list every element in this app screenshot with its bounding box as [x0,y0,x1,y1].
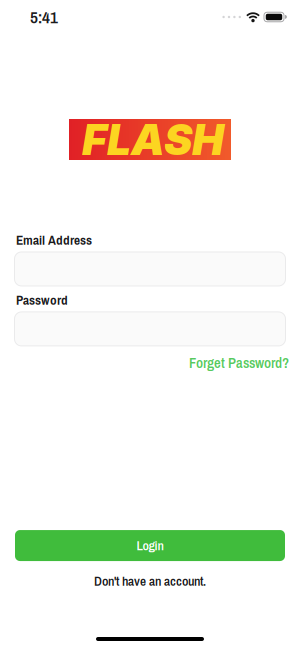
button[interactable]: Don't have an account. [94,572,206,590]
staticText: Don't have an account. [94,572,206,590]
staticText: Login [136,537,163,555]
staticText: Password [16,291,68,309]
staticText: Email Address [16,231,92,249]
staticText: 5:41 [30,5,58,29]
staticText: FLASH [82,114,224,165]
button[interactable]: Login [15,530,285,561]
staticText: Forget Password? [189,353,289,373]
button[interactable]: Forget Password? [189,353,289,373]
